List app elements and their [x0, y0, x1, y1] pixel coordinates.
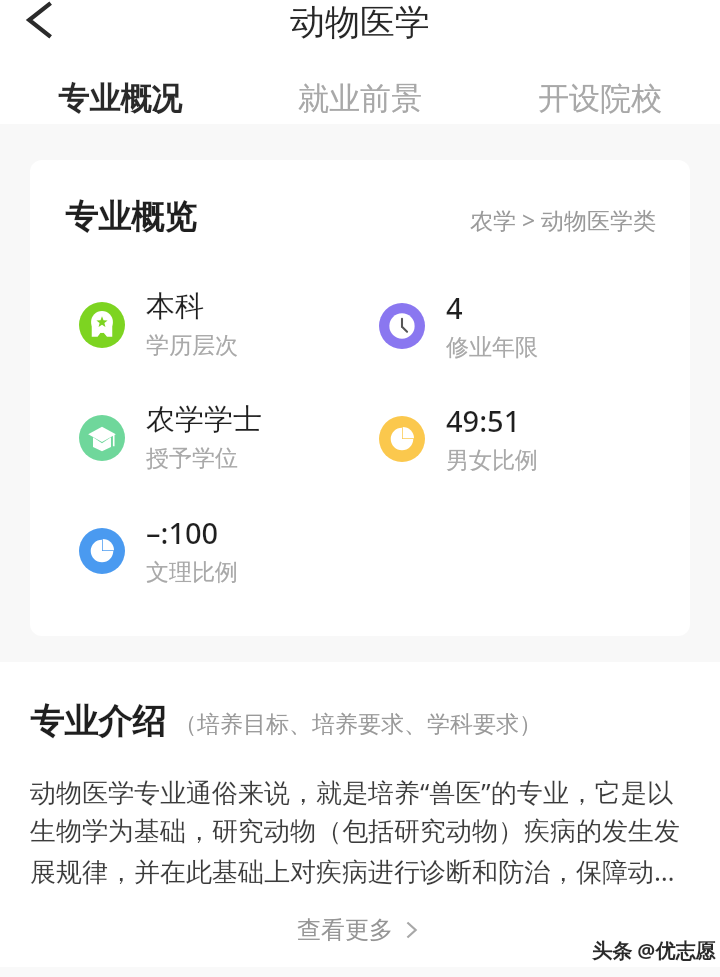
staticText: 专业概览 — [65, 196, 197, 238]
staticText: 开设院校 — [538, 79, 662, 118]
staticText: 49:51 — [446, 401, 521, 440]
staticText: 就业前景 — [298, 79, 422, 118]
staticText: 4 — [446, 288, 463, 327]
staticText: 动物医学 — [290, 0, 430, 44]
staticText: 农学 > 动物医学类 — [470, 204, 657, 235]
staticText: 专业介绍 — [30, 700, 166, 743]
button[interactable]: 开设院校 — [480, 73, 720, 123]
staticText: 男女比例 — [446, 446, 538, 475]
staticText: 学历层次 — [146, 331, 238, 360]
staticText: 专业概况 — [58, 79, 182, 118]
button[interactable]: Back — [8, 0, 72, 52]
button[interactable]: 专业概况 — [0, 73, 240, 123]
staticText: 修业年限 — [446, 333, 538, 362]
staticText: 头条 @优志愿 — [592, 937, 716, 964]
staticText: 文理比例 — [146, 558, 238, 587]
button[interactable]: 就业前景 — [240, 73, 480, 123]
staticText: 本科 — [146, 288, 204, 325]
staticText: –:100 — [146, 513, 219, 552]
staticText: 农学学士 — [146, 401, 262, 438]
staticText: （培养目标、培养要求、学科要求） — [174, 710, 542, 739]
staticText: 查看更多 — [297, 915, 393, 945]
button[interactable]: 查看更多 — [297, 915, 420, 945]
staticText: 动物医学专业通俗来说，就是培养“兽医”的专业，它是以生物学为基础，研究动物（包括… — [30, 771, 692, 890]
staticText: 授予学位 — [146, 444, 238, 473]
